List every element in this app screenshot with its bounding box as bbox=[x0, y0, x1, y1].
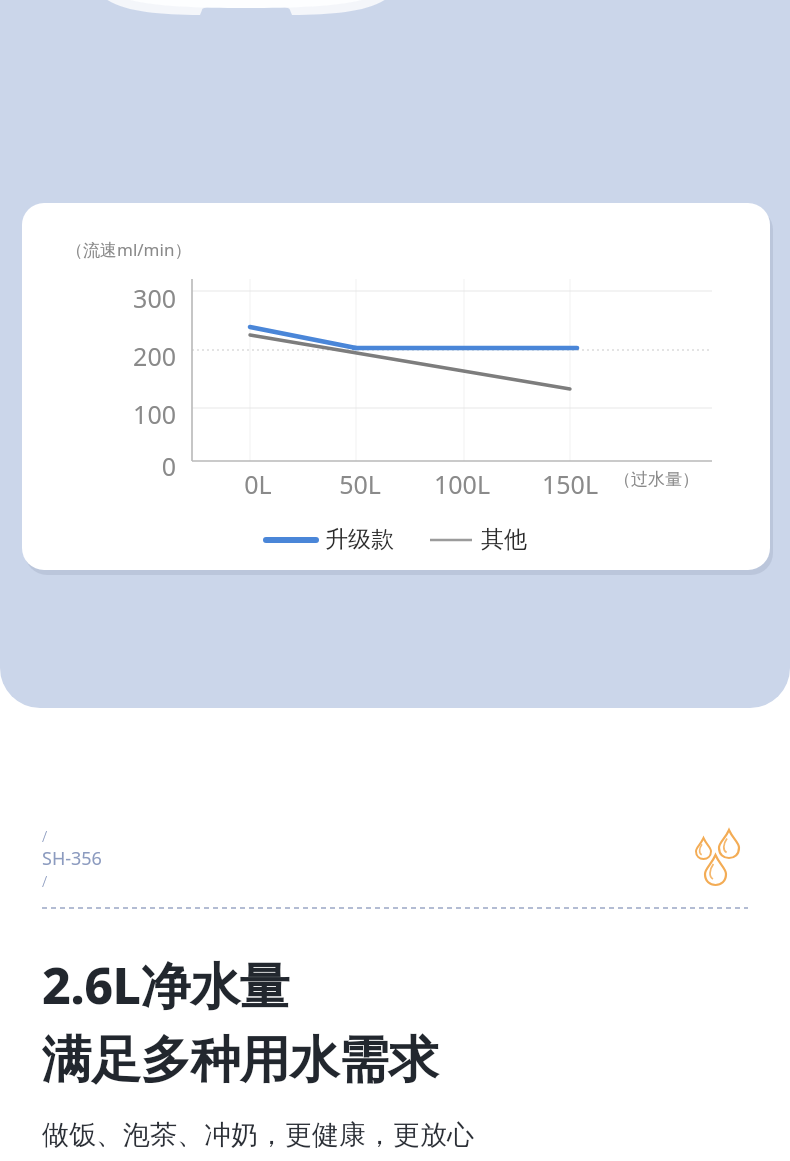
staticText: SH-356 bbox=[42, 846, 102, 871]
staticText: （流速ml/min） bbox=[66, 238, 192, 261]
staticText: 300 bbox=[110, 281, 176, 315]
staticText: 其他 bbox=[481, 525, 527, 554]
staticText: 100 bbox=[110, 397, 176, 431]
staticText: 升级款 bbox=[325, 525, 394, 554]
staticText: 150L bbox=[542, 467, 598, 501]
staticText: 50L bbox=[332, 467, 388, 501]
staticText: / bbox=[42, 826, 48, 846]
staticText: 0L bbox=[230, 467, 286, 501]
staticText: 200 bbox=[110, 339, 176, 373]
button[interactable]: （流速ml/min） bbox=[22, 203, 770, 570]
staticText: 0 bbox=[110, 449, 176, 483]
staticText: / bbox=[42, 871, 48, 891]
button[interactable]: 升级款 bbox=[266, 525, 394, 554]
other: Water drops bbox=[686, 828, 748, 890]
staticText: 100L bbox=[434, 467, 490, 501]
staticText: 满足多种用水需求 bbox=[42, 1029, 438, 1092]
button[interactable]: 其他 bbox=[430, 525, 527, 554]
staticText: 2.6L净水量 bbox=[42, 951, 290, 1019]
staticText: （过水量） bbox=[614, 469, 699, 490]
staticText: 做饭、泡茶、冲奶，更健康，更放心 bbox=[42, 1118, 474, 1152]
